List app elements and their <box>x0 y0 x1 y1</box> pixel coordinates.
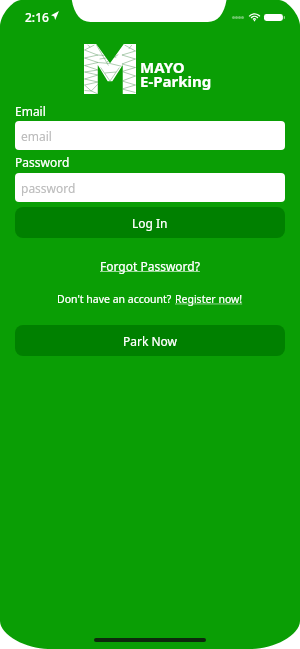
staticText: Park Now <box>123 333 178 349</box>
button[interactable]: Log In <box>15 207 285 238</box>
staticText: Forgot Password? <box>100 258 200 274</box>
staticText: E-Parking <box>140 71 212 91</box>
staticText: Register now! <box>175 292 243 306</box>
staticText: email <box>21 128 52 144</box>
button[interactable]: Park Now <box>15 325 285 356</box>
button[interactable]: Register now! <box>175 292 243 306</box>
staticText: Don't have an account? <box>57 292 175 306</box>
staticText: MAYO <box>140 57 185 77</box>
button[interactable]: password <box>15 173 285 202</box>
staticText: 2:16 <box>25 9 49 25</box>
staticText: Email <box>15 103 46 119</box>
staticText: Log In <box>132 215 168 231</box>
button[interactable]: email <box>15 121 285 150</box>
button[interactable]: Forgot Password? <box>100 258 200 274</box>
staticText: Password <box>15 154 70 170</box>
staticText: password <box>21 180 76 196</box>
